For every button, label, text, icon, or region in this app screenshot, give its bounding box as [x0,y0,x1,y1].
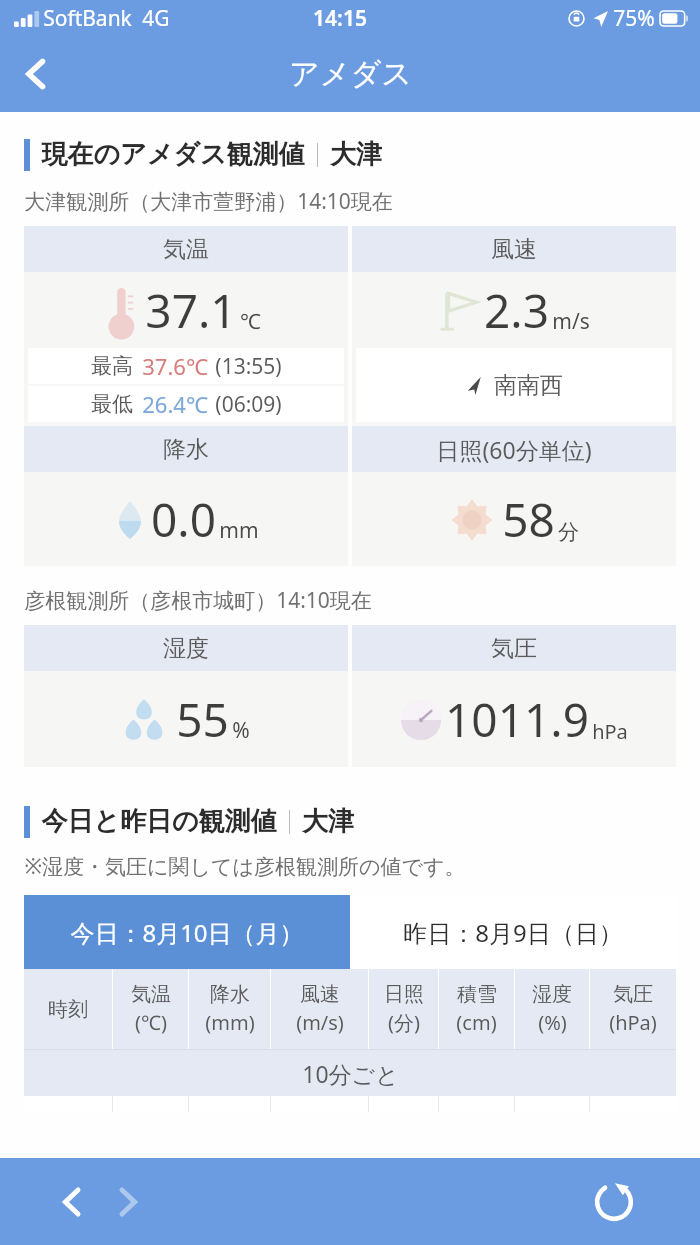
staticText: 26.4℃ [142,389,208,419]
staticText: 降水 [163,435,209,464]
staticText: ℃ [240,307,261,336]
staticText: 気温 [131,982,171,1007]
staticText: 彦根観測所（彦根市城町）14:10現在 [24,586,372,615]
staticText: 昨日：8月9日（日） [403,916,623,949]
staticText: 4G [142,4,170,33]
staticText: % [232,716,250,745]
staticText: 降水 [210,982,250,1007]
staticText: 湿度 [163,634,209,663]
staticText: 湿度 [532,982,572,1007]
staticText: 今日と昨日の観測値 [41,805,277,838]
staticText: 気温 [163,235,209,264]
staticText: mm [219,516,259,545]
staticText: 積雪 [457,982,497,1007]
button[interactable]: Forward [100,1174,156,1230]
staticText: (06:09) [215,390,282,419]
staticText: 日照(60分単位) [436,434,592,465]
staticText: 分 [558,519,579,545]
staticText: 最高 [91,353,133,379]
staticText: (13:55) [215,352,282,381]
button[interactable]: 昨日：8月9日（日） [350,895,676,969]
staticText: 気圧 [491,634,537,663]
staticText: 現在のアメダス観測値 [41,138,305,171]
staticText: アメダス [289,55,412,93]
staticText: hPa [592,718,628,745]
button[interactable]: Back [0,38,72,110]
staticText: 1011.9 [445,688,589,751]
button[interactable]: Reload [584,1172,644,1232]
staticText: (hPa) [609,1009,657,1036]
staticText: 時刻 [48,997,88,1022]
staticText: 55 [176,688,229,751]
staticText: (mm) [205,1009,255,1036]
staticText: 75% [613,4,655,33]
staticText: SoftBank [43,4,132,33]
staticText: (℃) [135,1009,167,1036]
staticText: 大津 [302,805,354,838]
staticText: m/s [552,307,590,336]
staticText: 風速 [491,235,537,264]
staticText: 58 [502,488,555,551]
staticText: 南南西 [494,371,563,400]
staticText: 14:15 [313,4,367,33]
staticText: 最低 [91,391,133,417]
staticText: (分) [388,1009,420,1036]
staticText: 37.6℃ [142,351,208,381]
staticText: (cm) [456,1009,497,1036]
staticText: 37.1 [145,279,237,342]
staticText: ※湿度・気圧に関しては彦根観測所の値です。 [24,852,466,881]
staticText: 気圧 [613,982,653,1007]
staticText: 大津観測所（大津市萱野浦）14:10現在 [24,187,393,216]
staticText: 風速 [300,982,340,1007]
staticText: 2.3 [484,279,549,342]
staticText: 10分ごと [302,1058,399,1089]
staticText: 日照 [384,982,424,1007]
staticText: 0.0 [151,488,216,551]
staticText: 大津 [330,138,382,171]
button[interactable]: 今日：8月10日（月） [24,895,350,969]
button[interactable]: Back [44,1174,100,1230]
staticText: (m/s) [296,1009,344,1036]
staticText: 今日：8月10日（月） [70,916,304,949]
staticText: (%) [538,1009,567,1036]
